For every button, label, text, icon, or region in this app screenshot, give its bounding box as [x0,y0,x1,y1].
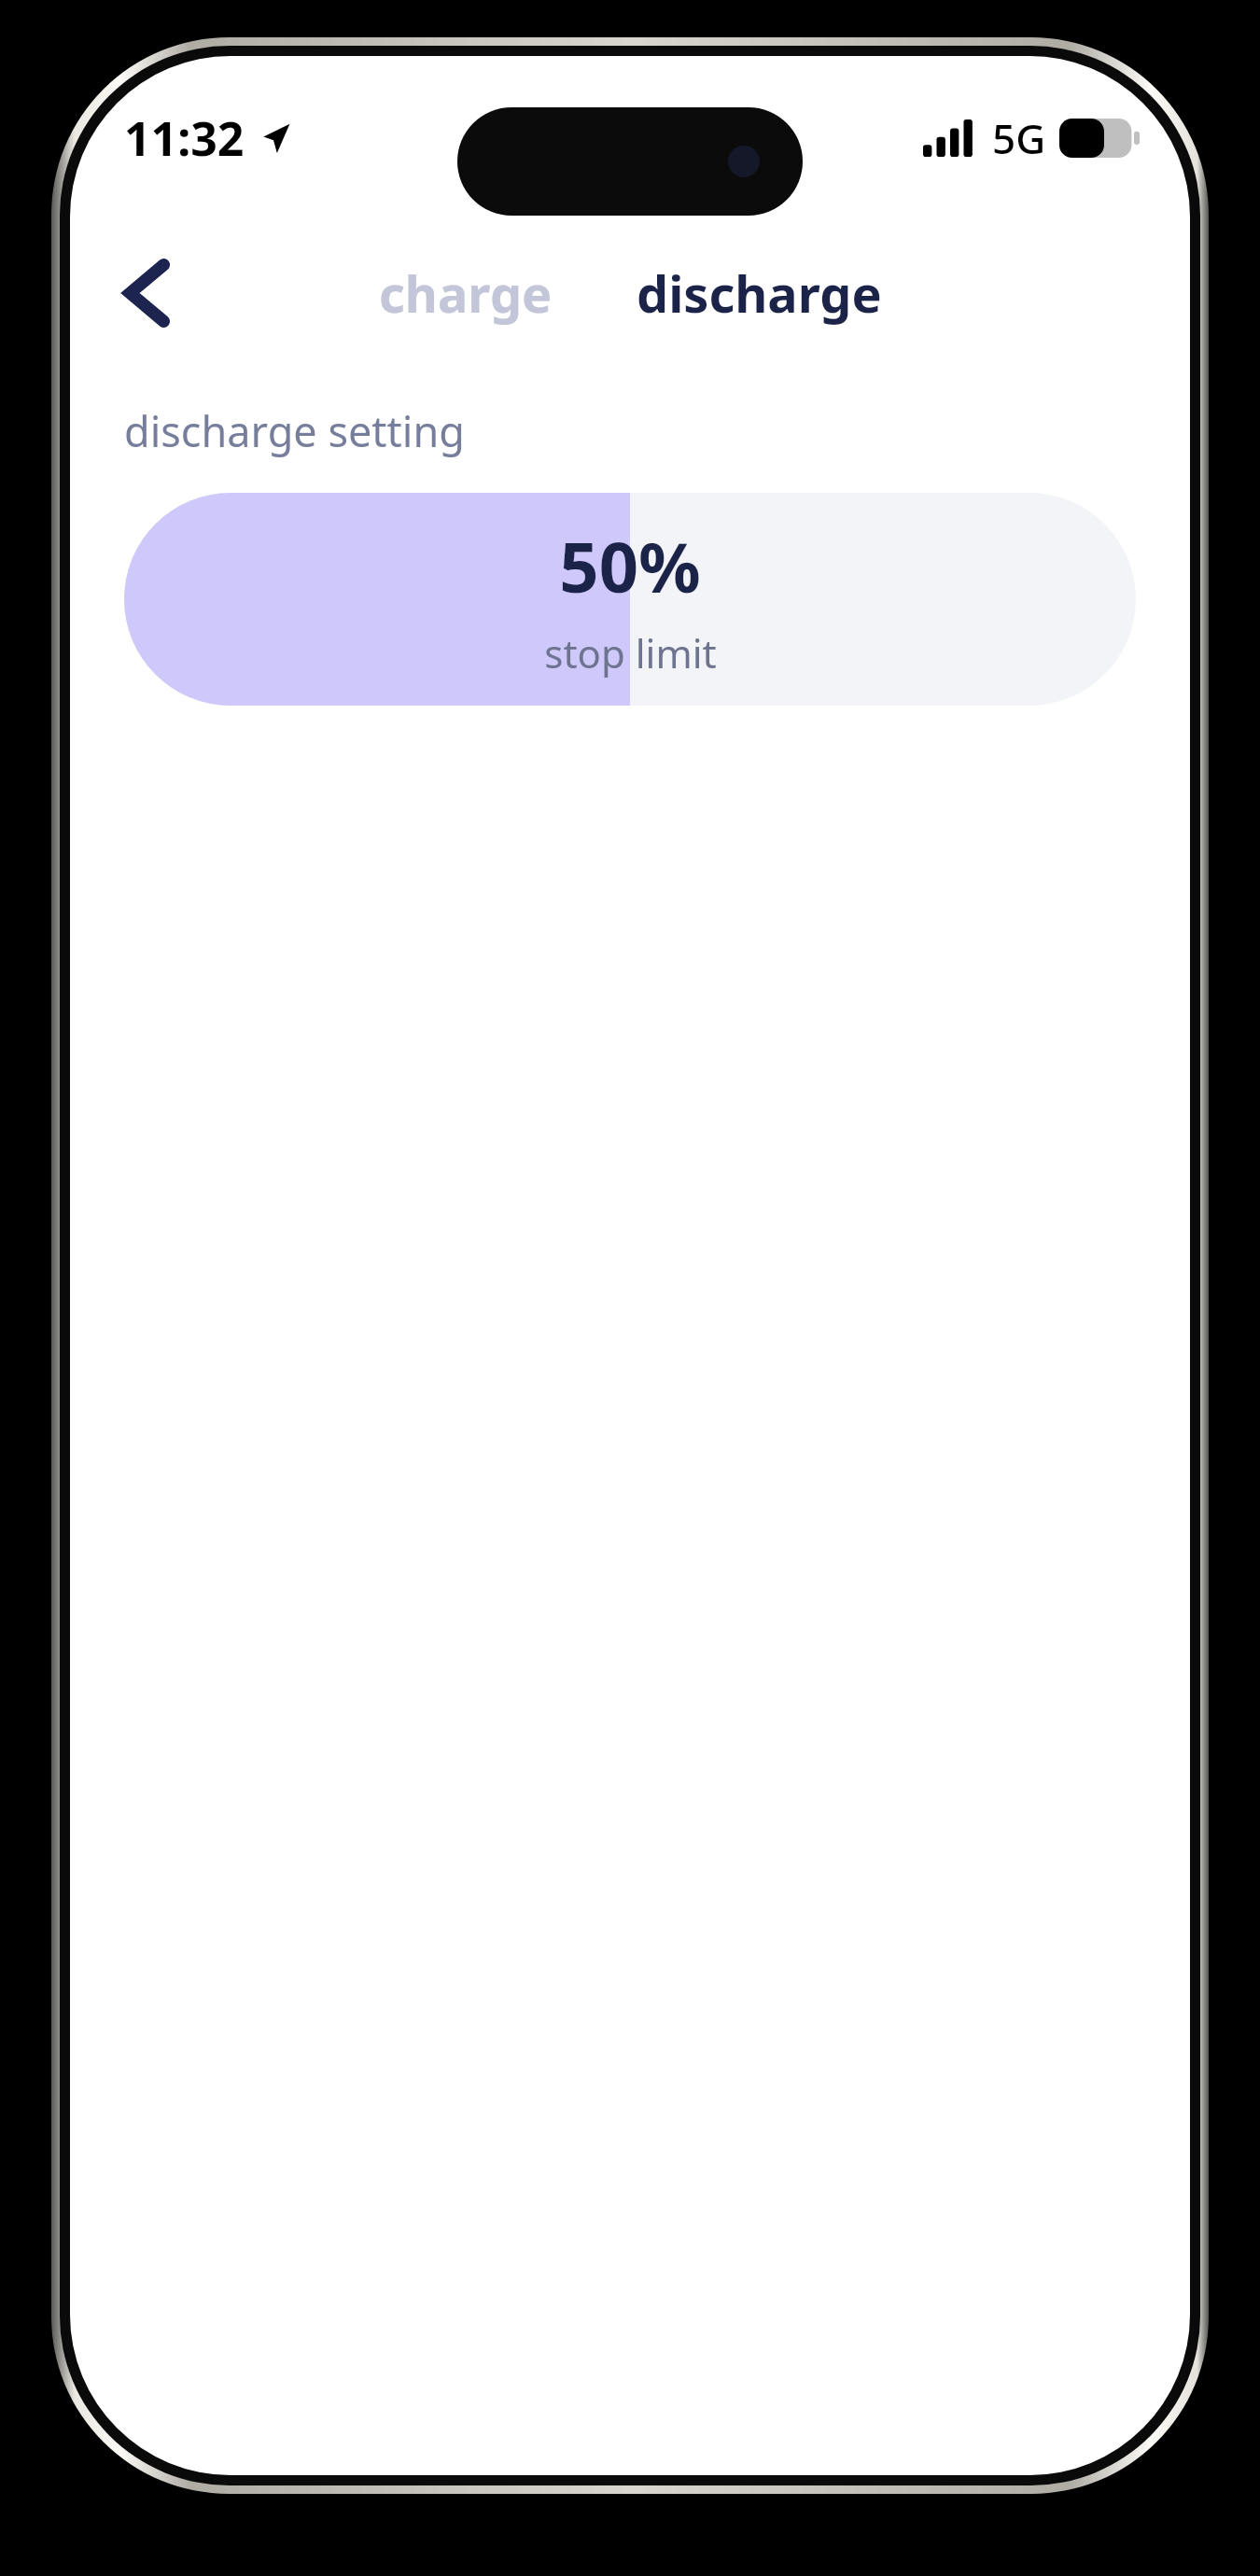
staticText: stop limit [544,626,717,679]
button[interactable]: charge [366,251,566,335]
staticText: 11:32 [124,106,245,170]
staticText: charge [379,259,553,328]
staticText: 5G [992,110,1046,166]
staticText: 50% [559,519,701,613]
button[interactable]: Back [107,254,186,332]
staticText: discharge setting [124,402,465,459]
staticText: discharge [637,259,882,328]
button[interactable]: discharge [623,251,895,335]
button[interactable]: 50% [124,493,1136,706]
